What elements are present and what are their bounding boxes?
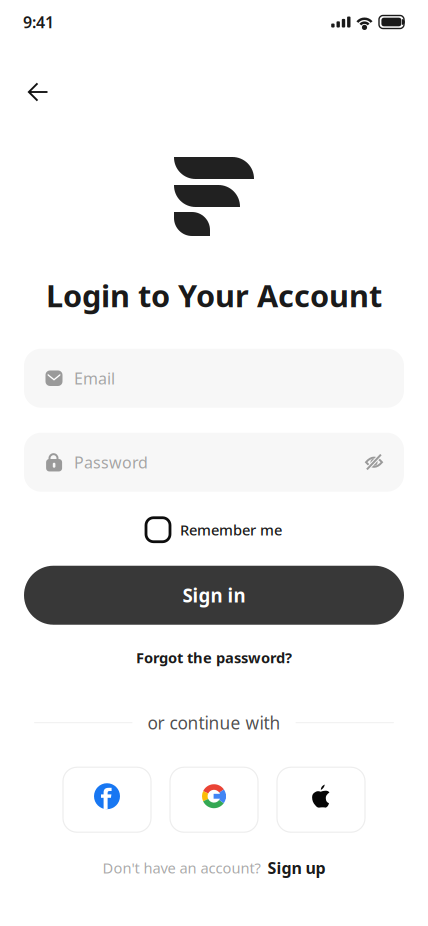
button[interactable]: Email xyxy=(24,349,404,408)
button[interactable]: Continue with Facebook xyxy=(63,767,151,832)
staticText: Login to Your Account xyxy=(46,275,382,316)
staticText: Email xyxy=(74,368,115,389)
button[interactable]: Forgot the password? xyxy=(124,642,304,673)
staticText: Password xyxy=(74,452,148,473)
staticText: or continue with xyxy=(147,711,280,734)
staticText: Sign in xyxy=(182,583,245,608)
button[interactable]: Continue with Apple xyxy=(277,767,365,832)
button[interactable]: Back xyxy=(16,70,60,114)
button[interactable]: Show password xyxy=(359,447,389,477)
button[interactable]: Continue with Google xyxy=(170,767,258,832)
staticText: Forgot the password? xyxy=(136,648,292,667)
button[interactable]: Sign up xyxy=(260,857,325,878)
staticText: 9:41 xyxy=(23,11,54,33)
staticText: Remember me xyxy=(180,520,282,539)
button[interactable]: Remember me xyxy=(146,516,282,544)
button[interactable]: Sign in xyxy=(24,566,404,625)
staticText: Sign up xyxy=(267,857,325,878)
staticText: Don't have an account? xyxy=(102,858,260,878)
